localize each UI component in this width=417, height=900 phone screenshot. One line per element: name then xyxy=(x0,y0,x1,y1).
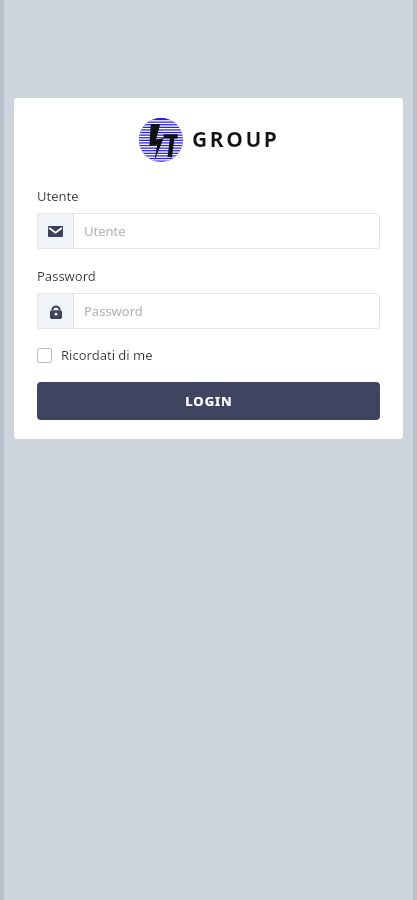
button[interactable]: Password xyxy=(37,293,380,329)
staticText: GROUP xyxy=(192,125,280,154)
staticText: Utente xyxy=(37,187,79,205)
staticText: Utente xyxy=(84,222,126,240)
button[interactable]: LOGIN xyxy=(37,382,380,420)
staticText: Password xyxy=(84,302,143,320)
staticText: LOGIN xyxy=(185,392,233,410)
staticText: Ricordati di me xyxy=(61,346,153,364)
button[interactable]: Utente xyxy=(37,213,380,249)
button[interactable]: Ricordati di me xyxy=(37,346,153,364)
staticText: Password xyxy=(37,267,96,285)
